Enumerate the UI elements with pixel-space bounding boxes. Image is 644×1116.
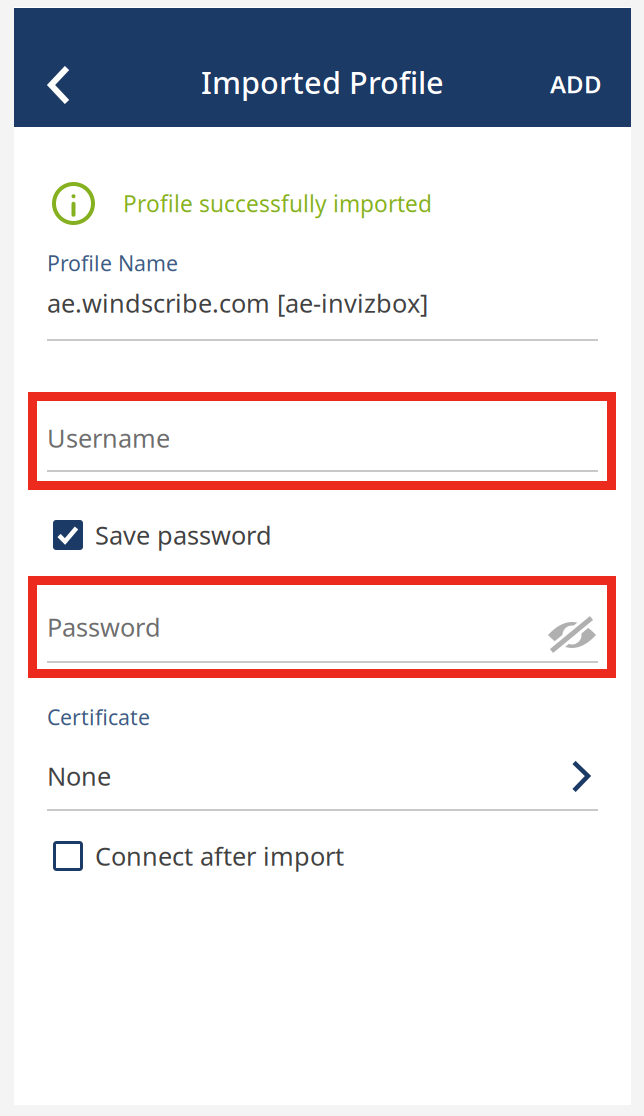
button[interactable]: Password: [47, 597, 598, 663]
button[interactable]: Show password: [541, 609, 603, 661]
staticText: Imported Profile: [201, 62, 444, 102]
staticText: Save password: [95, 518, 272, 552]
staticText: Username: [47, 421, 170, 455]
staticText: Password: [47, 610, 161, 644]
staticText: None: [47, 759, 111, 793]
staticText: Certificate: [47, 703, 150, 731]
button[interactable]: Profile Name: [47, 251, 598, 341]
button[interactable]: Back: [19, 45, 99, 125]
staticText: Connect after import: [95, 839, 344, 873]
staticText: ae.windscribe.com [ae-invizbox]: [47, 286, 428, 320]
button[interactable]: ADD: [531, 49, 621, 119]
button[interactable]: Connect after import: [53, 839, 604, 873]
staticText: Profile successfully imported: [123, 188, 432, 218]
staticText: Profile Name: [47, 249, 178, 277]
button[interactable]: Save password: [53, 518, 604, 552]
button[interactable]: Certificate: [47, 705, 598, 811]
staticText: ADD: [550, 68, 602, 100]
button[interactable]: Username: [47, 408, 598, 472]
